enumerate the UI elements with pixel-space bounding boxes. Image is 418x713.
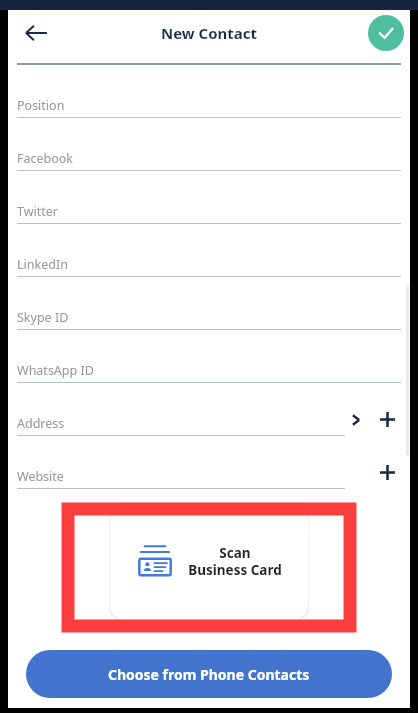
staticText: Twitter: [17, 203, 58, 220]
button[interactable]: Choose from Phone Contacts: [26, 650, 392, 698]
staticText: LinkedIn: [17, 256, 68, 273]
button[interactable]: Back: [14, 11, 58, 55]
staticText: Choose from Phone Contacts: [108, 665, 310, 684]
button[interactable]: Twitter: [8, 171, 410, 224]
button[interactable]: Facebook: [8, 118, 410, 171]
staticText: New Contact: [161, 23, 258, 43]
staticText: Website: [17, 468, 64, 485]
button[interactable]: Skype ID: [8, 277, 410, 330]
button[interactable]: Website: [8, 436, 410, 489]
button[interactable]: Add Address: [374, 406, 400, 432]
button[interactable]: Position: [8, 65, 410, 118]
button[interactable]: Add Website: [374, 459, 400, 485]
button[interactable]: Address: [8, 383, 410, 436]
staticText: Facebook: [17, 150, 74, 167]
button[interactable]: Save contact: [368, 15, 404, 51]
staticText: Scan Business Card: [188, 544, 282, 579]
button[interactable]: Expand address: [344, 408, 368, 432]
button[interactable]: LinkedIn: [8, 224, 410, 277]
staticText: Address: [17, 415, 65, 432]
staticText: Position: [17, 97, 65, 114]
button[interactable]: WhatsApp ID: [8, 330, 410, 383]
staticText: Skype ID: [17, 309, 69, 326]
button[interactable]: Scan Business Card: [109, 502, 309, 621]
staticText: WhatsApp ID: [17, 362, 94, 379]
